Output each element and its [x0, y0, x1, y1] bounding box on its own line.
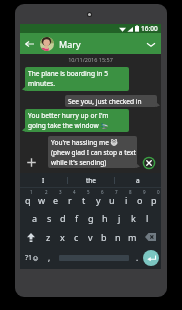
button[interactable]: Back [21, 35, 38, 52]
staticText: u [109, 194, 115, 206]
button[interactable]: 4 [63, 188, 77, 208]
staticText: ?1 [25, 253, 33, 263]
staticText: i [125, 194, 128, 206]
staticText: 16:00 [141, 24, 158, 33]
staticText: g [88, 212, 94, 224]
staticText: o [137, 194, 143, 206]
staticText: . [136, 252, 139, 263]
button[interactable]: 7 [105, 188, 119, 208]
staticText: n [115, 231, 121, 243]
button[interactable]: Space [56, 247, 132, 269]
staticText: s [47, 212, 52, 224]
staticText: 5 [87, 189, 90, 195]
staticText: v [88, 231, 93, 243]
staticText: l [146, 212, 149, 224]
button[interactable]: You're hassling me 😺 (phew glad I can st… [48, 136, 137, 168]
staticText: w [38, 194, 46, 206]
staticText: q [25, 194, 31, 206]
staticText: 1 [30, 189, 33, 195]
staticText: a [136, 176, 140, 185]
staticText: I [42, 176, 45, 185]
button[interactable]: 2 [35, 188, 49, 208]
staticText: , [48, 252, 51, 263]
button[interactable]: j [112, 208, 126, 227]
button[interactable]: d [56, 208, 70, 227]
staticText: 4 [73, 189, 76, 195]
staticText: the [86, 176, 97, 185]
button[interactable]: Add attachment [24, 155, 38, 169]
staticText: k [131, 212, 136, 224]
staticText: r [68, 194, 72, 206]
staticText: e [53, 194, 59, 206]
button[interactable]: f [70, 208, 84, 227]
button[interactable]: Send [141, 247, 161, 269]
button[interactable]: I [20, 173, 67, 187]
staticText: You're hassling me 😺 (phew glad I can st… [51, 138, 136, 167]
button[interactable]: h [98, 208, 112, 227]
button[interactable]: l [140, 208, 154, 227]
staticText: x [60, 231, 65, 243]
button[interactable]: 9 [133, 188, 147, 208]
button[interactable]: n [111, 227, 125, 247]
staticText: m [128, 231, 137, 243]
staticText: 0 [157, 189, 160, 195]
staticText: 2 [45, 189, 48, 195]
button[interactable]: More options [142, 35, 160, 53]
button[interactable]: a [115, 173, 161, 187]
staticText: d [60, 212, 66, 224]
button[interactable]: Symbols [20, 247, 42, 269]
staticText: b [101, 231, 107, 243]
button[interactable]: 1 [20, 188, 35, 208]
button[interactable]: 8 [119, 188, 133, 208]
staticText: t [82, 194, 86, 206]
staticText: z [46, 231, 51, 243]
staticText: y [96, 194, 101, 206]
button[interactable]: v [83, 227, 97, 247]
button[interactable]: , [42, 247, 56, 269]
button[interactable]: You better hurry up or I'm going take th… [25, 109, 129, 132]
button[interactable]: c [69, 227, 83, 247]
button[interactable]: g [84, 208, 98, 227]
button[interactable]: a [27, 208, 42, 227]
staticText: f [75, 212, 79, 224]
button[interactable]: See you, just checked in [65, 95, 157, 107]
staticText: 8 [129, 189, 132, 195]
button[interactable]: m [125, 227, 139, 247]
staticText: c [74, 231, 79, 243]
staticText: h [102, 212, 108, 224]
button[interactable]: Shift [20, 227, 41, 247]
button[interactable]: z [41, 227, 55, 247]
button[interactable]: Delete [139, 227, 161, 247]
button[interactable]: 0 [147, 188, 161, 208]
staticText: Mary [59, 38, 81, 50]
staticText: j [118, 212, 121, 224]
staticText: 3 [59, 189, 62, 195]
staticText: a [32, 212, 38, 224]
button[interactable]: b [97, 227, 111, 247]
button[interactable]: Cancel sending [141, 155, 156, 170]
button[interactable]: 3 [49, 188, 63, 208]
staticText: 10/11/2016 15:57 [20, 56, 161, 63]
staticText: 9 [143, 189, 146, 195]
staticText: 7 [115, 189, 118, 195]
staticText: See you, just checked in [68, 97, 142, 106]
staticText: The plane is boarding in 5 minutes. [28, 69, 128, 88]
button[interactable]: 6 [91, 188, 105, 208]
staticText: 6 [101, 189, 104, 195]
button[interactable]: . [130, 247, 144, 269]
staticText: You better hurry up or I'm going take th… [28, 111, 128, 130]
button[interactable]: k [126, 208, 140, 227]
button[interactable]: the [68, 173, 114, 187]
button[interactable]: 5 [77, 188, 91, 208]
button[interactable]: x [55, 227, 69, 247]
button[interactable]: s [42, 208, 56, 227]
staticText: p [151, 194, 157, 206]
button[interactable]: The plane is boarding in 5 minutes. [25, 67, 129, 91]
